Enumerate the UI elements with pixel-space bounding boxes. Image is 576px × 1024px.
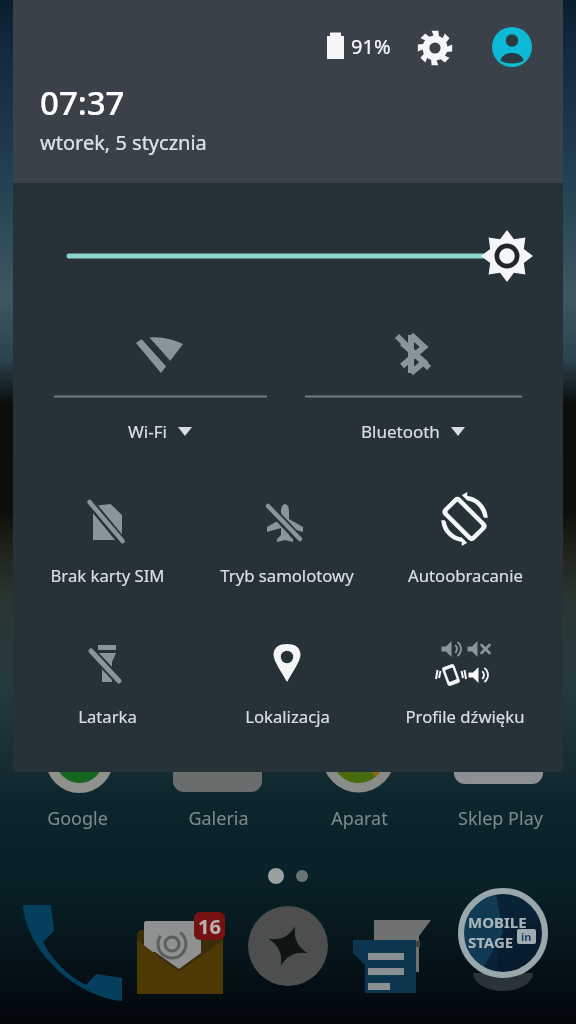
button[interactable]: Latarka: [15, 656, 199, 728]
button[interactable]: Profile dźwięku: [373, 656, 557, 728]
staticText: MOBILE: [468, 912, 527, 932]
staticText: Google: [47, 806, 108, 831]
button[interactable]: Bluetooth: [313, 415, 513, 447]
button[interactable]: Aparat: [289, 806, 429, 831]
staticText: Sklep Play: [458, 806, 543, 831]
staticText: Aparat: [331, 806, 388, 831]
button[interactable]: Tryb samolotowy: [195, 515, 379, 587]
staticText: Brak karty SIM: [50, 564, 165, 587]
staticText: Latarka: [78, 705, 137, 728]
staticText: 16: [198, 913, 221, 940]
button[interactable]: Lokalizacja: [195, 656, 379, 728]
button[interactable]: Autoobracanie: [373, 515, 557, 587]
staticText: Wi-Fi: [128, 420, 167, 443]
button[interactable]: Sklep Play: [430, 806, 570, 831]
staticText: 07:37: [40, 80, 125, 125]
button[interactable]: Wi-Fi: [60, 415, 260, 447]
staticText: 91%: [351, 33, 391, 60]
staticText: STAGE: [468, 932, 514, 952]
staticText: Tryb samolotowy: [220, 564, 354, 587]
staticText: Autoobracanie: [408, 564, 523, 587]
button[interactable]: Google: [7, 806, 147, 831]
staticText: Profile dźwięku: [405, 705, 525, 728]
staticText: wtorek, 5 stycznia: [40, 129, 207, 156]
staticText: Bluetooth: [361, 420, 440, 443]
button[interactable]: Galeria: [148, 806, 288, 831]
staticText: in: [521, 929, 532, 944]
staticText: Galeria: [188, 806, 249, 831]
staticText: Lokalizacja: [245, 705, 330, 728]
button[interactable]: Brak karty SIM: [15, 515, 199, 587]
